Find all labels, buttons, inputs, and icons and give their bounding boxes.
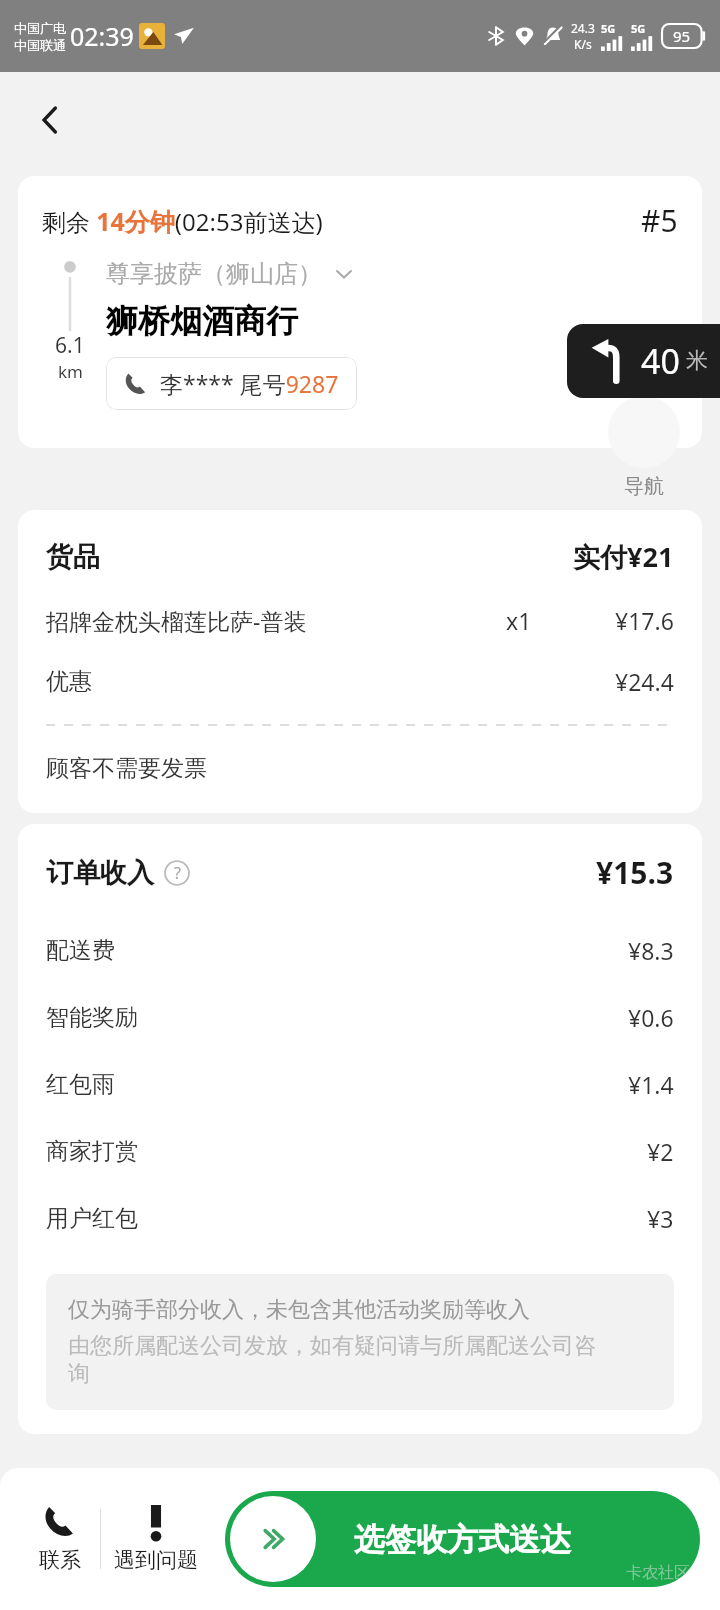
staticText: 商家打赏: [46, 1137, 138, 1166]
staticText: 中国联通: [14, 37, 66, 53]
staticText: K/s: [574, 36, 592, 52]
staticText: 顾客不需要发票: [46, 754, 207, 783]
staticText: 李**** 尾号9287: [160, 368, 339, 399]
staticText: 5G: [631, 21, 646, 36]
staticText: 询: [68, 1360, 90, 1388]
staticText: x1: [506, 605, 532, 636]
staticText: 尊享披萨（狮山店）: [106, 259, 322, 289]
staticText: 02:39: [70, 19, 134, 53]
staticText: 95: [673, 26, 691, 46]
staticText: 实付¥21: [573, 538, 674, 575]
staticText: 用户红包: [46, 1204, 138, 1233]
staticText: 卡农社区: [626, 1563, 690, 1583]
staticText: 中国广电: [14, 20, 66, 36]
staticText: ¥15.3: [596, 852, 674, 893]
staticText: 剩余 14分钟(02:53前送达): [42, 204, 323, 238]
staticText: 导航: [624, 474, 664, 499]
staticText: ¥2: [647, 1136, 674, 1167]
staticText: 40: [641, 338, 680, 384]
staticText: ¥17.6: [615, 605, 674, 636]
staticText: ¥24.4: [615, 666, 674, 697]
staticText: 优惠: [46, 667, 92, 696]
staticText: 配送费: [46, 936, 115, 965]
staticText: 6.1: [55, 331, 85, 360]
staticText: 5G: [601, 21, 616, 36]
staticText: 米: [686, 347, 708, 375]
button[interactable]: Back: [22, 92, 78, 148]
staticText: ¥8.3: [628, 935, 674, 966]
staticText: 订单收入: [46, 856, 154, 890]
staticText: 货品: [46, 540, 100, 574]
staticText: #5: [641, 200, 678, 241]
staticText: ?: [174, 862, 181, 884]
staticText: ¥3: [647, 1203, 674, 1234]
button[interactable]: 遇到问题: [101, 1468, 211, 1610]
button[interactable]: Navigate: [608, 396, 680, 468]
staticText: km: [58, 360, 83, 383]
staticText: 由您所属配送公司发放，如有疑问请与所属配送公司咨: [68, 1332, 596, 1360]
staticText: 智能奖励: [46, 1003, 138, 1032]
button[interactable]: Income info: [164, 860, 190, 886]
button[interactable]: 李**** 尾号9287: [106, 357, 357, 410]
button[interactable]: 联系: [20, 1468, 100, 1610]
staticText: 联系: [39, 1547, 81, 1573]
staticText: 红包雨: [46, 1070, 115, 1099]
button[interactable]: 选签收方式送达: [225, 1491, 700, 1587]
button[interactable]: 尊享披萨（狮山店）: [106, 259, 354, 289]
staticText: 仅为骑手部分收入，未包含其他活动奖励等收入: [68, 1296, 530, 1324]
staticText: 选签收方式送达: [354, 1520, 571, 1559]
staticText: 24.3: [571, 20, 595, 36]
staticText: 遇到问题: [114, 1547, 198, 1573]
staticText: ¥1.4: [628, 1069, 674, 1100]
staticText: 狮桥烟酒商行: [106, 301, 298, 341]
staticText: 招牌金枕头榴莲比萨-普装: [46, 605, 307, 636]
button[interactable]: 40: [567, 324, 720, 398]
staticText: ¥0.6: [628, 1002, 674, 1033]
